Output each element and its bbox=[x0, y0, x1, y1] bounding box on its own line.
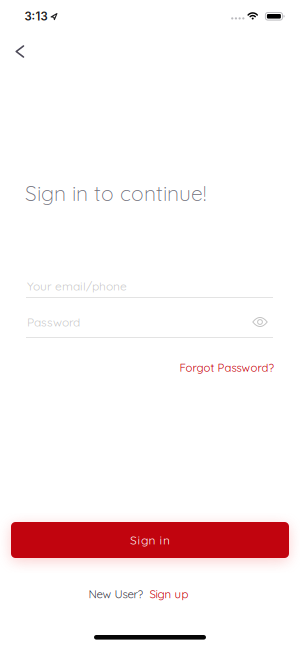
staticText: Your email/phone bbox=[27, 278, 127, 293]
staticText: 3:13 bbox=[24, 10, 47, 23]
button[interactable]: Forgot Password? bbox=[179, 360, 273, 375]
staticText: Sign up bbox=[149, 587, 188, 601]
staticText: Forgot Password? bbox=[179, 360, 273, 375]
button[interactable]: Sign in bbox=[11, 522, 289, 558]
staticText: Sign in bbox=[130, 532, 170, 547]
staticText: Password bbox=[27, 314, 80, 329]
staticText: New User? bbox=[88, 587, 143, 601]
button[interactable]: Back bbox=[0, 33, 40, 69]
staticText: Sign in to continue! bbox=[25, 180, 206, 206]
button[interactable]: Sign up bbox=[149, 587, 188, 601]
button[interactable]: Show password bbox=[252, 316, 268, 327]
